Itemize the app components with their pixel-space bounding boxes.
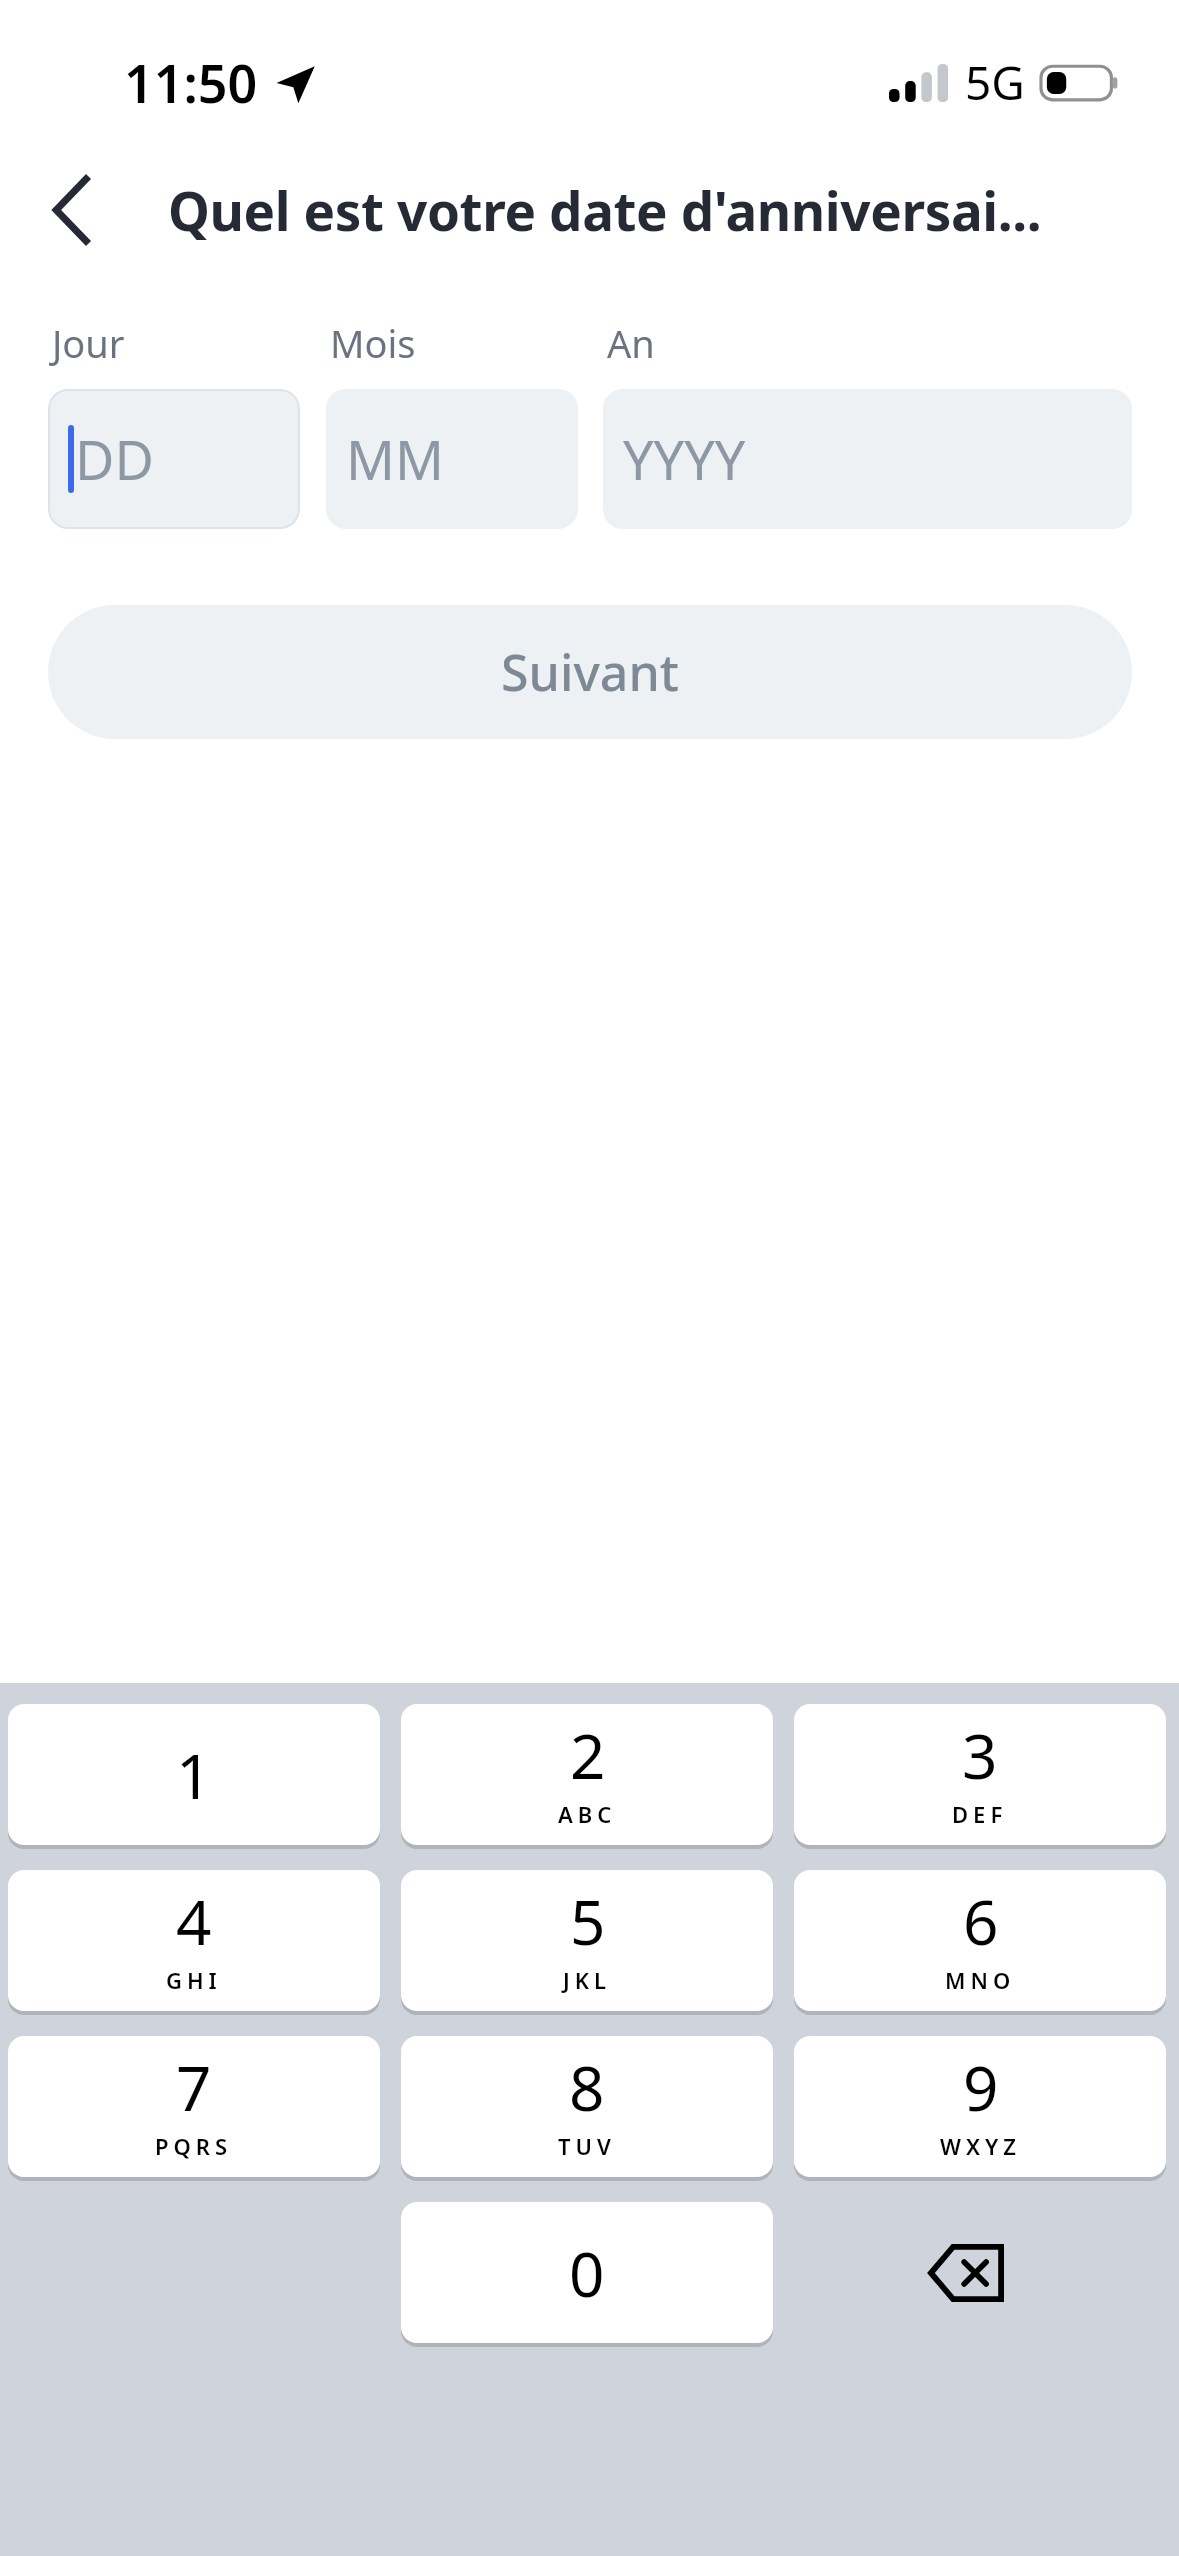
staticText: 1 bbox=[176, 1733, 212, 1817]
staticText: YYYY bbox=[623, 422, 746, 496]
staticText: DEF bbox=[952, 1799, 1008, 1829]
staticText: TUV bbox=[558, 2131, 616, 2161]
button[interactable]: 1 bbox=[8, 1704, 380, 1849]
staticText: 7 bbox=[176, 2045, 212, 2129]
staticText: 4 bbox=[176, 1879, 212, 1963]
staticText: 8 bbox=[569, 2045, 605, 2129]
staticText: An bbox=[607, 317, 655, 369]
staticText: 5G bbox=[965, 51, 1025, 114]
button[interactable]: 6 bbox=[794, 1870, 1166, 2015]
button[interactable]: 3 bbox=[794, 1704, 1166, 1849]
button[interactable]: 9 bbox=[794, 2036, 1166, 2181]
staticText: 3 bbox=[962, 1713, 998, 1797]
staticText: Suivant bbox=[501, 638, 679, 706]
button[interactable]: 4 bbox=[8, 1870, 380, 2015]
button[interactable]: 7 bbox=[8, 2036, 380, 2181]
staticText: GHI bbox=[166, 1965, 222, 1995]
button[interactable]: DD bbox=[48, 389, 300, 529]
staticText: Jour bbox=[52, 317, 125, 369]
staticText: ABC bbox=[558, 1799, 617, 1829]
staticText: 5 bbox=[570, 1879, 606, 1963]
button[interactable]: Suivant bbox=[48, 605, 1132, 739]
staticText: 6 bbox=[963, 1879, 999, 1963]
staticText: DD bbox=[75, 422, 154, 496]
button[interactable]: YYYY bbox=[603, 389, 1132, 529]
staticText: Quel est votre date d'anniversai... bbox=[168, 174, 1042, 246]
button[interactable]: 0 bbox=[401, 2202, 773, 2347]
button[interactable]: 8 bbox=[401, 2036, 773, 2181]
button[interactable]: 2 bbox=[401, 1704, 773, 1849]
staticText: 2 bbox=[570, 1713, 606, 1797]
button[interactable]: 5 bbox=[401, 1870, 773, 2015]
staticText: MNO bbox=[945, 1965, 1016, 1995]
staticText: JKL bbox=[563, 1965, 612, 1995]
staticText: MM bbox=[346, 422, 444, 496]
staticText: 11:50 bbox=[124, 47, 258, 118]
button[interactable]: Back bbox=[22, 160, 122, 260]
button[interactable]: Backspace bbox=[773, 2202, 1158, 2343]
staticText: WXYZ bbox=[940, 2131, 1021, 2161]
staticText: 0 bbox=[569, 2231, 605, 2315]
staticText: Mois bbox=[330, 317, 416, 369]
staticText: 9 bbox=[963, 2045, 999, 2129]
button[interactable]: MM bbox=[326, 389, 578, 529]
staticText: PQRS bbox=[155, 2131, 233, 2161]
